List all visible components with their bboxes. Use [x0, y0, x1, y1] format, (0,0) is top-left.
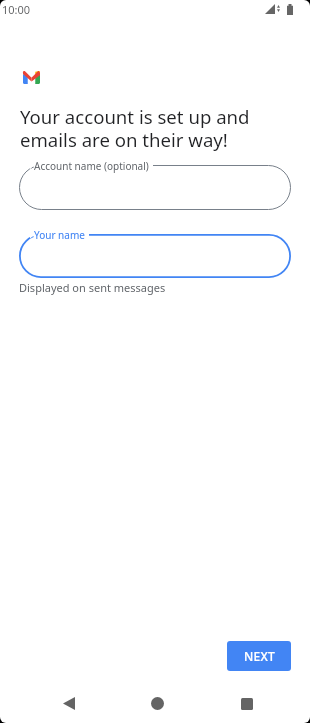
staticText: Your account is set up and emails are on… [20, 104, 250, 153]
button[interactable]: Account name (optional) [19, 165, 291, 210]
button[interactable]: NEXT [227, 641, 291, 671]
staticText: NEXT [244, 648, 275, 664]
staticText: Your name [34, 228, 85, 242]
button[interactable]: Your name [19, 234, 291, 278]
staticText: Displayed on sent messages [19, 280, 166, 295]
staticText: 10:00 [2, 2, 31, 17]
button[interactable]: Home [143, 689, 172, 718]
button[interactable]: Recent apps [232, 689, 261, 718]
staticText: Account name (optional) [34, 159, 149, 173]
button[interactable]: Back [54, 689, 83, 718]
